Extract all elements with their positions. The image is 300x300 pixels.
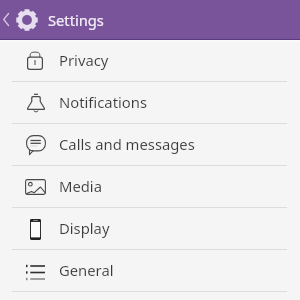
staticText: General — [59, 260, 114, 280]
staticText: Media — [59, 176, 102, 196]
button[interactable]: Display — [0, 208, 300, 249]
button[interactable]: Notifications — [0, 82, 300, 123]
button[interactable]: Calls and messages — [0, 124, 300, 165]
button[interactable]: Media — [0, 166, 300, 207]
staticText: Calls and messages — [59, 134, 195, 154]
button[interactable]: Settings — [14, 0, 40, 39]
staticText: Privacy — [59, 50, 109, 70]
staticText: Notifications — [59, 92, 148, 112]
button[interactable]: Back — [0, 0, 14, 39]
staticText: Settings — [48, 10, 104, 30]
button[interactable]: General — [0, 250, 300, 291]
button[interactable]: Privacy — [0, 40, 300, 81]
staticText: Display — [59, 218, 110, 238]
